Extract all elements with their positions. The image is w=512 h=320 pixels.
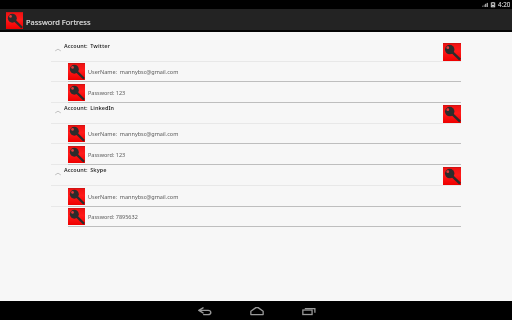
staticText: Password: 7895632 (88, 213, 138, 220)
button[interactable]: UserName: mannybsc@gmail.com (0, 186, 512, 207)
button[interactable]: Home (249, 301, 264, 320)
button[interactable]: Account: Twitter (0, 41, 512, 62)
button[interactable]: Password: 123 (0, 82, 512, 103)
staticText: Password: 123 (88, 151, 126, 158)
staticText: Account: LinkedIn (64, 104, 115, 111)
button[interactable]: Account: LinkedIn (0, 103, 512, 124)
button[interactable]: UserName: mannybsc@gmail.com (0, 61, 512, 82)
button[interactable]: Recents (301, 301, 316, 320)
staticText: Password Fortress (26, 17, 91, 27)
button[interactable]: Back (197, 301, 212, 320)
button[interactable]: Password: 7895632 (0, 206, 512, 227)
staticText: Account: Twitter (64, 42, 110, 49)
staticText: 4:20 (498, 0, 511, 8)
staticText: Password: 123 (88, 89, 126, 96)
button[interactable]: UserName: mannybsc@gmail.com (0, 123, 512, 144)
staticText: UserName: mannybsc@gmail.com (88, 193, 179, 200)
button[interactable]: Account: Skype (0, 165, 512, 186)
staticText: UserName: mannybsc@gmail.com (88, 130, 179, 137)
staticText: UserName: mannybsc@gmail.com (88, 68, 179, 75)
staticText: Account: Skype (64, 166, 107, 173)
button[interactable]: Password: 123 (0, 144, 512, 165)
